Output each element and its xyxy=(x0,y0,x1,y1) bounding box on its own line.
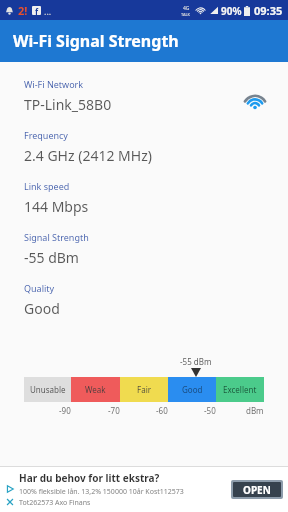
staticText: Fair xyxy=(137,384,152,395)
staticText: Excellent xyxy=(223,384,257,395)
staticText: Tot262573 Axo Finans xyxy=(19,498,91,508)
staticText: -60 xyxy=(156,405,168,416)
staticText: Link speed xyxy=(24,180,70,192)
staticText: Har du behov for litt ekstra? xyxy=(19,471,160,485)
staticText: 09:35 xyxy=(254,3,283,18)
staticText: 90% xyxy=(221,4,242,18)
staticText: Wi-Fi Network xyxy=(24,78,84,90)
staticText: Good xyxy=(182,384,203,395)
other: Wi-Fi signal strength xyxy=(242,87,268,113)
button[interactable]: Har du behov for litt ekstra? xyxy=(0,466,288,512)
staticText: Good xyxy=(24,299,60,318)
staticText: Wi-Fi Signal Strength xyxy=(13,30,179,52)
staticText: 144 Mbps xyxy=(24,197,89,216)
button[interactable]: Unusable xyxy=(24,377,71,402)
staticText: f xyxy=(35,6,39,15)
staticText: Frequency xyxy=(24,129,68,141)
button[interactable]: Excellent xyxy=(216,377,264,402)
staticText: Unusable xyxy=(30,384,66,395)
staticText: TP-Link_58B0 xyxy=(24,95,112,114)
staticText: -90 xyxy=(59,405,71,416)
button[interactable]: OPEN xyxy=(233,482,281,497)
staticText: ... xyxy=(44,5,52,17)
staticText: 2! xyxy=(18,3,28,18)
staticText: Signal Strength xyxy=(24,231,89,243)
staticText: TALK xyxy=(181,12,191,17)
staticText: OPEN xyxy=(243,483,271,497)
staticText: -55 dBm xyxy=(24,248,79,267)
button[interactable]: Fair xyxy=(120,377,168,402)
staticText: 2.4 GHz (2412 MHz) xyxy=(24,146,152,165)
staticText: dBm xyxy=(246,405,264,416)
button[interactable]: Weak xyxy=(71,377,120,402)
staticText: Weak xyxy=(85,384,106,395)
staticText: -50 xyxy=(204,405,216,416)
staticText: -55 dBm xyxy=(180,356,212,367)
staticText: -70 xyxy=(108,405,120,416)
staticText: 100% fleksible lån. 13,2% 150000 10år Ko… xyxy=(19,487,184,497)
staticText: Quality xyxy=(24,282,55,294)
staticText: 4G xyxy=(183,5,190,12)
button[interactable]: Good xyxy=(168,377,216,402)
